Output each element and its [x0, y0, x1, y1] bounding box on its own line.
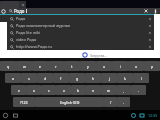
button[interactable]: e — [32, 61, 48, 71]
button[interactable]: Clear text — [143, 8, 149, 14]
staticText: v — [63, 88, 65, 93]
button[interactable]: / — [104, 97, 117, 107]
button[interactable]: f — [53, 73, 69, 83]
button[interactable]: s — [21, 73, 37, 83]
button[interactable]: b — [71, 85, 86, 95]
staticText: a — [12, 76, 14, 81]
staticText: t — [71, 64, 73, 69]
button[interactable]: Родо — [0, 15, 154, 22]
staticText: r — [55, 64, 57, 69]
button[interactable]: ?123 — [13, 97, 35, 107]
button[interactable]: , — [116, 85, 131, 95]
button[interactable]: h — [85, 73, 101, 83]
staticText: ?123 — [20, 100, 28, 105]
button[interactable]: p — [144, 61, 160, 71]
button[interactable]: d — [37, 73, 53, 83]
staticText: s — [28, 76, 30, 81]
button[interactable]: More options — [153, 9, 158, 14]
button[interactable]: r — [48, 61, 64, 71]
button[interactable]: t — [64, 61, 80, 71]
button[interactable]: n — [86, 85, 101, 95]
staticText: Загрузка… — [90, 53, 107, 58]
staticText: g — [76, 76, 79, 81]
staticText: English (US) — [60, 100, 80, 105]
staticText: , — [123, 88, 124, 93]
staticText: . — [138, 88, 139, 93]
button[interactable]: g — [69, 73, 85, 83]
button[interactable]: Родо компьютерный журнал — [7, 22, 154, 29]
staticText: c — [48, 88, 50, 93]
button[interactable]: English (US) — [35, 97, 104, 107]
staticText: q — [7, 64, 10, 69]
staticText: d — [44, 76, 47, 81]
button[interactable]: video Родо — [7, 36, 154, 43]
button[interactable]: Recent apps — [12, 112, 19, 119]
staticText: http://www.Родо.ru — [16, 44, 52, 49]
button[interactable]: u — [96, 61, 112, 71]
button[interactable]: Page info — [1, 9, 6, 14]
button[interactable]: z — [11, 85, 26, 95]
button[interactable]: l — [133, 73, 149, 83]
staticText: h — [92, 76, 95, 81]
button[interactable]: m — [101, 85, 116, 95]
staticText: i — [120, 64, 121, 69]
staticText: . — [123, 100, 124, 105]
staticText: z — [18, 88, 20, 93]
staticText: y — [87, 64, 89, 69]
button[interactable]: j — [101, 73, 117, 83]
button[interactable]: w — [16, 61, 32, 71]
staticText: video Родо — [16, 37, 37, 42]
staticText: w — [23, 64, 26, 69]
staticText: Родо lite wiki — [16, 30, 41, 35]
staticText: b — [77, 88, 80, 93]
button[interactable]: http://www.Родо.ru — [7, 43, 154, 50]
staticText: 12:35 — [148, 113, 158, 118]
staticText: j — [109, 76, 110, 81]
button[interactable]: q — [0, 61, 16, 71]
staticText: n — [92, 88, 95, 93]
button[interactable]: c — [41, 85, 56, 95]
button[interactable]: Back — [2, 112, 9, 119]
button[interactable]: New tab — [19, 1, 26, 8]
button[interactable]: a — [5, 73, 21, 83]
staticText: f — [60, 76, 62, 81]
staticText: Родо — [14, 8, 25, 14]
staticText: m — [107, 88, 111, 93]
button[interactable]: v — [56, 85, 71, 95]
staticText: p — [151, 64, 154, 69]
button[interactable]: k — [117, 73, 133, 83]
staticText: Родо компьютерный журнал — [16, 23, 71, 28]
button[interactable]: y — [80, 61, 96, 71]
button[interactable]: . — [131, 85, 146, 95]
staticText: l — [141, 76, 142, 81]
staticText: e — [39, 64, 41, 69]
button[interactable]: x — [26, 85, 41, 95]
button[interactable]: i — [112, 61, 128, 71]
staticText: u — [103, 64, 106, 69]
staticText: / — [110, 100, 112, 105]
button[interactable]: Родо lite wiki — [7, 29, 154, 36]
staticText: o — [135, 64, 138, 69]
button[interactable]: . — [117, 97, 130, 107]
button[interactable]: o — [128, 61, 144, 71]
staticText: k — [124, 76, 126, 81]
staticText: x — [33, 88, 35, 93]
staticText: Родо — [16, 16, 26, 21]
